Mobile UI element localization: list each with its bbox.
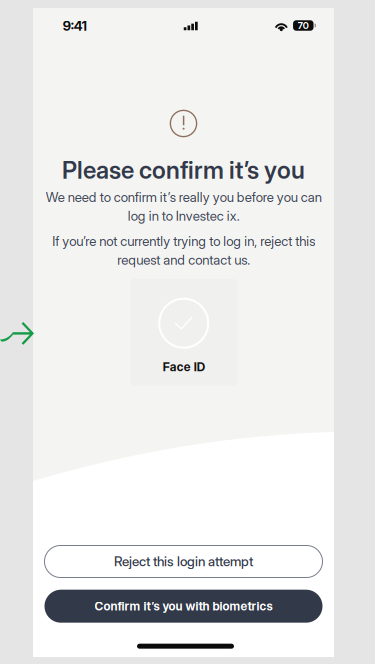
button[interactable]: Confirm it’s you with biometrics [44, 590, 322, 623]
staticText: Reject this login attempt [114, 554, 253, 569]
staticText: Confirm it’s you with biometrics [94, 599, 272, 613]
staticText: Face ID [163, 360, 205, 374]
button[interactable]: Reject this login attempt [44, 545, 322, 577]
staticText: Please confirm it’s you [62, 156, 305, 184]
staticText: If you’re not currently trying to log in… [52, 233, 315, 268]
staticText: We need to confirm it’s really you befor… [45, 189, 321, 224]
staticText: 9:41 [63, 18, 87, 34]
button[interactable]: Face ID [130, 279, 237, 386]
staticText: 70 [298, 20, 309, 31]
